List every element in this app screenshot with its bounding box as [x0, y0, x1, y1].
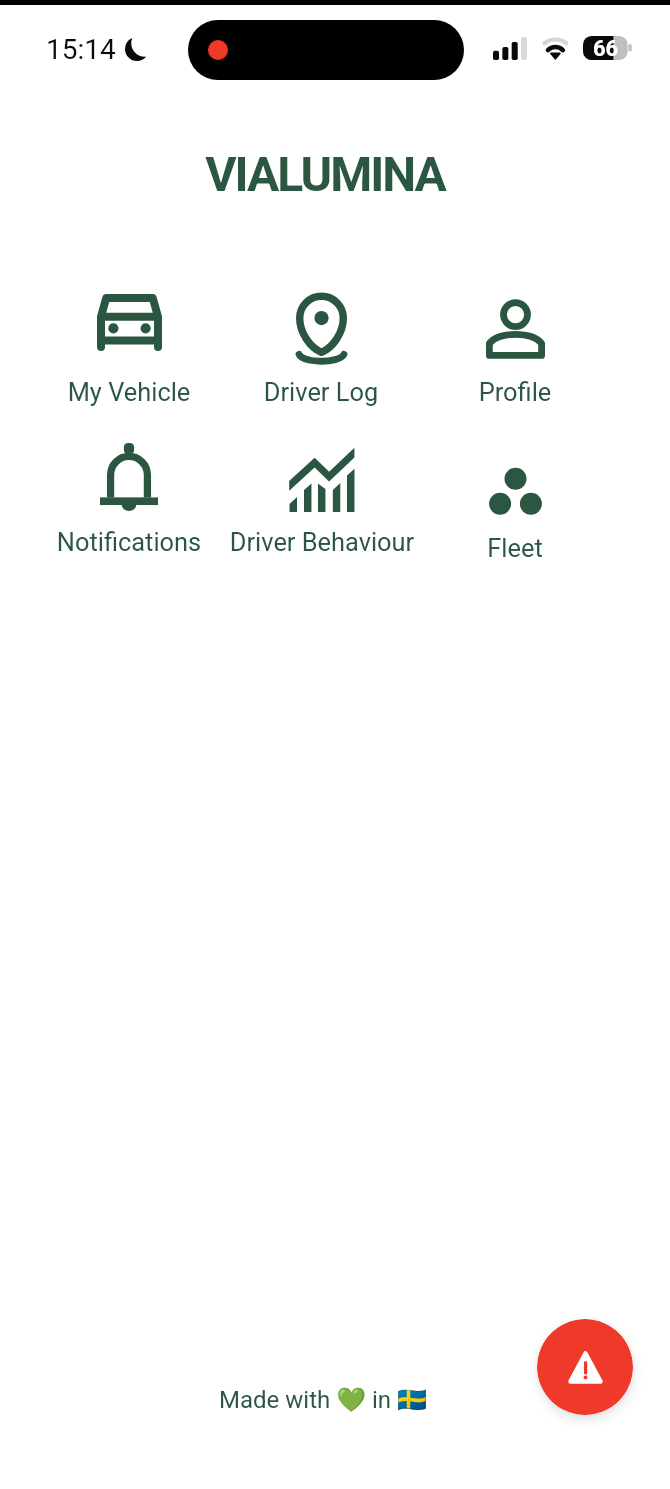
button[interactable]: Profile	[410, 285, 620, 417]
button[interactable]: Report incident	[537, 1319, 633, 1415]
button[interactable]: Notifications	[24, 429, 234, 567]
button[interactable]: Driver Log	[216, 284, 426, 417]
staticText: Fleet	[410, 533, 620, 563]
staticText: 15:14	[46, 33, 116, 66]
staticText: Notifications	[24, 527, 234, 557]
staticText: 66	[593, 36, 619, 60]
button[interactable]: Fleet	[410, 453, 620, 573]
staticText: My Vehicle	[24, 377, 234, 407]
staticText: Driver Log	[216, 377, 426, 407]
staticText: Driver Behaviour	[217, 527, 427, 557]
staticText: Profile	[410, 377, 620, 407]
button[interactable]: Driver Behaviour	[217, 431, 427, 567]
button[interactable]: My Vehicle	[24, 280, 234, 417]
staticText: VIALUMINA	[0, 146, 650, 202]
staticText: Made with 💚 in 🇸🇪	[0, 1386, 646, 1414]
